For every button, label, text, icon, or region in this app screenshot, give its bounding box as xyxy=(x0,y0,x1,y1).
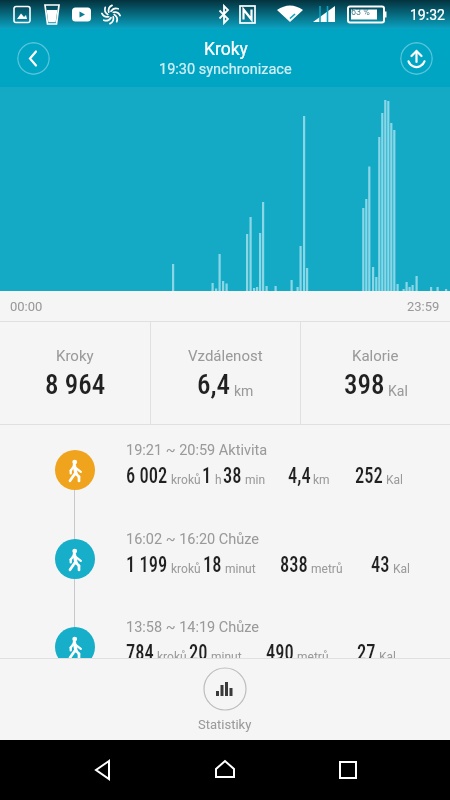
staticText: 20 xyxy=(189,640,208,666)
staticText: 6,4 xyxy=(197,369,231,401)
staticText: Kal xyxy=(386,473,403,487)
staticText: 19:21 ~ 20:59 Aktivita xyxy=(126,442,268,459)
staticText: kroků xyxy=(171,562,201,576)
button[interactable]: 13:58 ~ 14:19 Chůze xyxy=(0,602,450,690)
staticText: 8 964 xyxy=(45,369,106,401)
staticText: 38 xyxy=(223,463,242,489)
staticText: Kal xyxy=(388,383,408,399)
staticText: 19:32 xyxy=(410,7,445,23)
button[interactable]: Back xyxy=(17,42,50,75)
staticText: Vzdálenost xyxy=(188,347,263,365)
staticText: km xyxy=(313,473,330,487)
staticText: 23:59 xyxy=(407,299,440,314)
button[interactable]: Recents xyxy=(328,750,368,790)
button[interactable]: Kroky xyxy=(0,322,150,425)
staticText: metrů xyxy=(311,562,343,576)
staticText: 398 xyxy=(344,369,385,401)
button[interactable]: Back xyxy=(83,750,123,790)
staticText: h xyxy=(215,473,222,487)
staticText: Statistiky xyxy=(198,717,252,732)
staticText: Kal xyxy=(379,650,396,664)
staticText: 18 xyxy=(203,552,222,578)
staticText: 1 xyxy=(202,463,212,489)
staticText: 63 % xyxy=(351,7,370,18)
staticText: km xyxy=(234,383,254,399)
staticText: 13:58 ~ 14:19 Chůze xyxy=(126,619,260,636)
button[interactable]: Share xyxy=(400,42,433,75)
staticText: 4,4 xyxy=(288,463,311,489)
staticText: kroků xyxy=(157,650,187,664)
staticText: minut xyxy=(211,650,242,664)
staticText: min xyxy=(245,473,266,487)
staticText: kroků xyxy=(171,473,201,487)
button[interactable]: Statistiky xyxy=(198,667,252,732)
staticText: metrů xyxy=(297,650,329,664)
staticText: 19:30 synchronizace xyxy=(159,61,292,78)
button[interactable]: 19:21 ~ 20:59 Aktivita xyxy=(0,425,450,513)
button[interactable]: Home xyxy=(205,750,245,790)
button[interactable]: 16:02 ~ 16:20 Chůze xyxy=(0,514,450,602)
staticText: 784 xyxy=(126,640,155,666)
staticText: 43 xyxy=(371,552,390,578)
staticText: Kroky xyxy=(56,347,94,365)
button[interactable]: Vzdálenost xyxy=(151,322,300,425)
staticText: 838 xyxy=(280,552,309,578)
staticText: 252 xyxy=(355,463,384,489)
staticText: 16:02 ~ 16:20 Chůze xyxy=(126,531,260,548)
staticText: 1 199 xyxy=(126,552,168,578)
staticText: 490 xyxy=(266,640,295,666)
staticText: 27 xyxy=(357,640,376,666)
staticText: 6 002 xyxy=(126,463,168,489)
staticText: Kroky xyxy=(204,39,248,60)
staticText: Kal xyxy=(393,562,410,576)
button[interactable]: Kalorie xyxy=(301,322,450,425)
staticText: 00:00 xyxy=(10,299,43,314)
staticText: Kalorie xyxy=(352,347,399,365)
staticText: minut xyxy=(225,562,256,576)
